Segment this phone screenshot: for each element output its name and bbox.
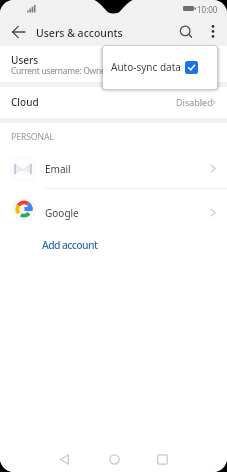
- staticText: Users & accounts: [36, 26, 123, 40]
- button[interactable]: Users: [0, 46, 227, 82]
- button[interactable]: Auto-sync data: [103, 46, 217, 89]
- button[interactable]: Search: [174, 20, 198, 44]
- staticText: Users: [11, 53, 39, 67]
- button[interactable]: Email: [0, 146, 227, 190]
- button[interactable]: Add account: [0, 234, 227, 266]
- button[interactable]: More options: [202, 20, 224, 44]
- button[interactable]: Google: [0, 190, 227, 234]
- button[interactable]: Cloud: [0, 87, 227, 118]
- button[interactable]: Back: [52, 447, 76, 471]
- staticText: Current username: Owner: [11, 65, 109, 77]
- staticText: 10:00: [197, 4, 218, 15]
- staticText: Disabled: [176, 96, 213, 108]
- staticText: Email: [45, 162, 71, 176]
- staticText: Auto-sync data: [111, 60, 181, 74]
- button[interactable]: Recents: [150, 447, 174, 471]
- button[interactable]: Home: [102, 447, 126, 471]
- staticText: Add account: [42, 238, 98, 252]
- staticText: PERSONAL: [11, 131, 54, 143]
- staticText: Google: [45, 206, 79, 220]
- staticText: Cloud: [11, 95, 39, 109]
- button[interactable]: Back: [4, 20, 32, 44]
